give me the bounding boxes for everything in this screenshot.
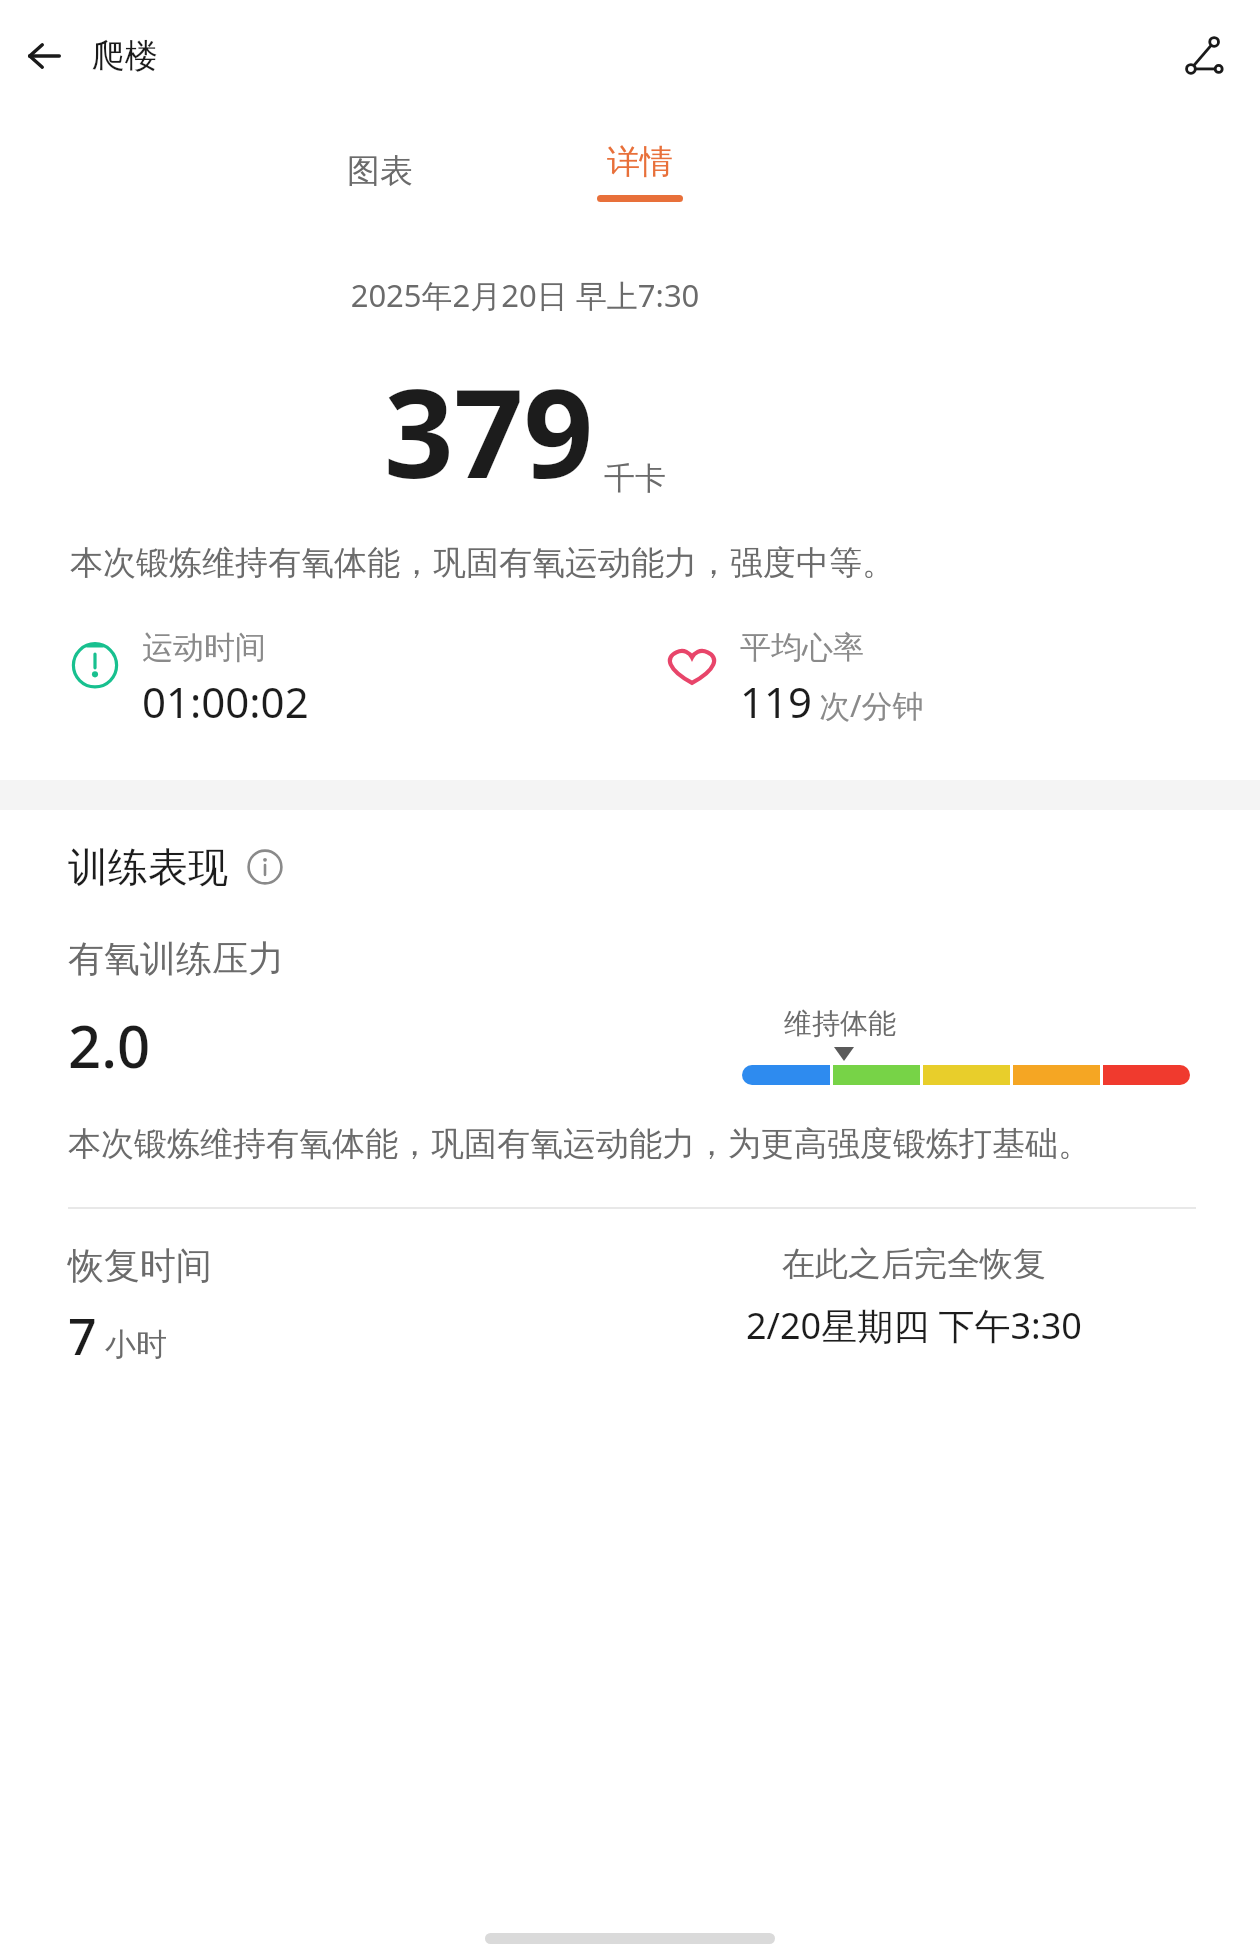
staticText: 本次锻炼维持有氧体能，巩固有氧运动能力，为更高强度锻炼打基础。 — [68, 1123, 1208, 1165]
staticText: 恢复时间 — [68, 1243, 212, 1288]
staticText: 在此之后完全恢复 — [782, 1243, 1046, 1285]
staticText: 详情 — [607, 141, 673, 183]
staticText: 运动时间 — [142, 628, 266, 667]
staticText: 2/20星期四 下午3:30 — [746, 1301, 1082, 1350]
staticText: 平均心率 — [740, 628, 864, 667]
button[interactable]: Back — [14, 26, 74, 86]
staticText: 图表 — [347, 150, 413, 192]
staticText: 7 — [68, 1302, 97, 1370]
staticText: 训练表现 — [68, 842, 228, 892]
button[interactable]: Share — [1172, 23, 1238, 89]
staticText: 维持体能 — [784, 1006, 896, 1041]
staticText: 2.0 — [68, 1006, 151, 1085]
button[interactable]: Info — [242, 844, 288, 890]
staticText: 次/分钟 — [819, 684, 924, 726]
staticText: 379 — [384, 348, 594, 514]
staticText: 小时 — [105, 1325, 167, 1364]
staticText: 2025年2月20日 早上7:30 — [30, 274, 1020, 316]
button[interactable]: 图表 — [250, 112, 510, 230]
staticText: 有氧训练压力 — [68, 936, 284, 981]
staticText: 爬楼 — [92, 35, 158, 77]
button[interactable]: 详情 — [510, 112, 770, 230]
staticText: 千卡 — [604, 459, 666, 498]
staticText: 01:00:02 — [142, 673, 309, 730]
staticText: 119 — [740, 673, 813, 730]
staticText: 本次锻炼维持有氧体能，巩固有氧运动能力，强度中等。 — [70, 542, 1200, 584]
